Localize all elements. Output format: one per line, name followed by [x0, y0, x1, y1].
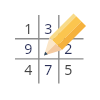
button[interactable]: Sudoku puzzle	[0, 0, 100, 100]
